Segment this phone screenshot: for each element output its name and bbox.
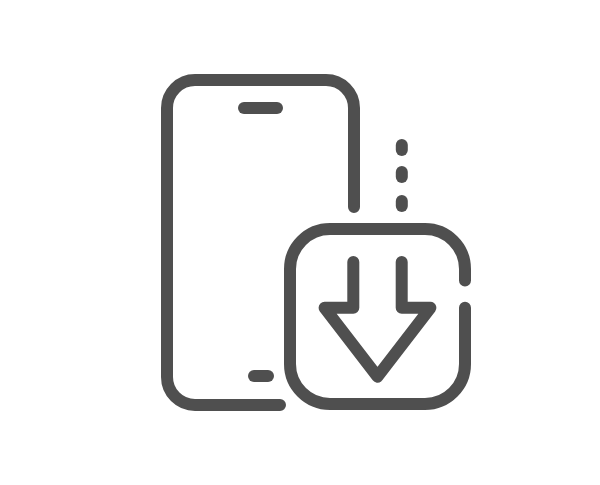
- button[interactable]: Download to phone: [0, 0, 600, 485]
